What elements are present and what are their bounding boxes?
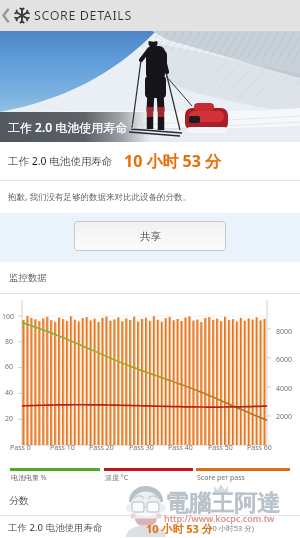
staticText: Pass 0 bbox=[10, 443, 31, 453]
staticText: 工作 2.0 电池使用寿命 bbox=[8, 521, 103, 534]
staticText: 工作 2.0 电池使用寿命 bbox=[8, 154, 113, 168]
staticText: 電腦王阿達 bbox=[165, 489, 280, 518]
staticText: 10 小时 53 分 bbox=[124, 150, 222, 172]
staticText: Pass 30 bbox=[129, 443, 154, 453]
button[interactable]: 共享 bbox=[74, 221, 226, 251]
staticText: Pass 60 bbox=[247, 443, 272, 453]
button[interactable]: 电池电量 % bbox=[10, 468, 100, 483]
staticText: 8000 bbox=[276, 327, 293, 337]
staticText: 2.0 bbox=[131, 122, 141, 132]
button[interactable]: Score per pass bbox=[196, 468, 290, 483]
staticText: 4000 bbox=[276, 384, 293, 394]
staticText: (10 小时53 分) bbox=[206, 523, 255, 533]
staticText: 100 bbox=[2, 312, 15, 322]
staticText: Score per pass bbox=[197, 473, 245, 483]
button[interactable]: 温度 °C bbox=[104, 468, 193, 483]
staticText: 60 bbox=[5, 362, 14, 372]
staticText: Pass 20 bbox=[89, 443, 114, 453]
staticText: 80 bbox=[5, 337, 14, 347]
staticText: 20 bbox=[5, 414, 14, 424]
button[interactable]: Back bbox=[0, 0, 34, 31]
staticText: 2000 bbox=[276, 412, 293, 422]
staticText: Pass 10 bbox=[50, 443, 75, 453]
staticText: 40 bbox=[5, 388, 14, 398]
staticText: 电池电量 % bbox=[11, 473, 47, 483]
staticText: 10 小时 53 分 bbox=[146, 521, 213, 536]
staticText: 抱歉, 我们没有足够的数据来对比此设备的分数。 bbox=[8, 191, 191, 203]
staticText: 工作 2.0 电池使用寿命 bbox=[8, 119, 128, 135]
staticText: 共享 bbox=[140, 230, 161, 243]
staticText: Pass 40 bbox=[168, 443, 193, 453]
staticText: 6000 bbox=[276, 355, 293, 365]
staticText: 监控数据 bbox=[9, 272, 47, 284]
staticText: SCORE DETAILS bbox=[34, 7, 132, 24]
staticText: http://www.kocpc.com.tw bbox=[164, 512, 275, 524]
staticText: 温度 °C bbox=[105, 473, 129, 483]
staticText: Pass 50 bbox=[208, 443, 233, 453]
staticText: 分数 bbox=[9, 494, 29, 507]
